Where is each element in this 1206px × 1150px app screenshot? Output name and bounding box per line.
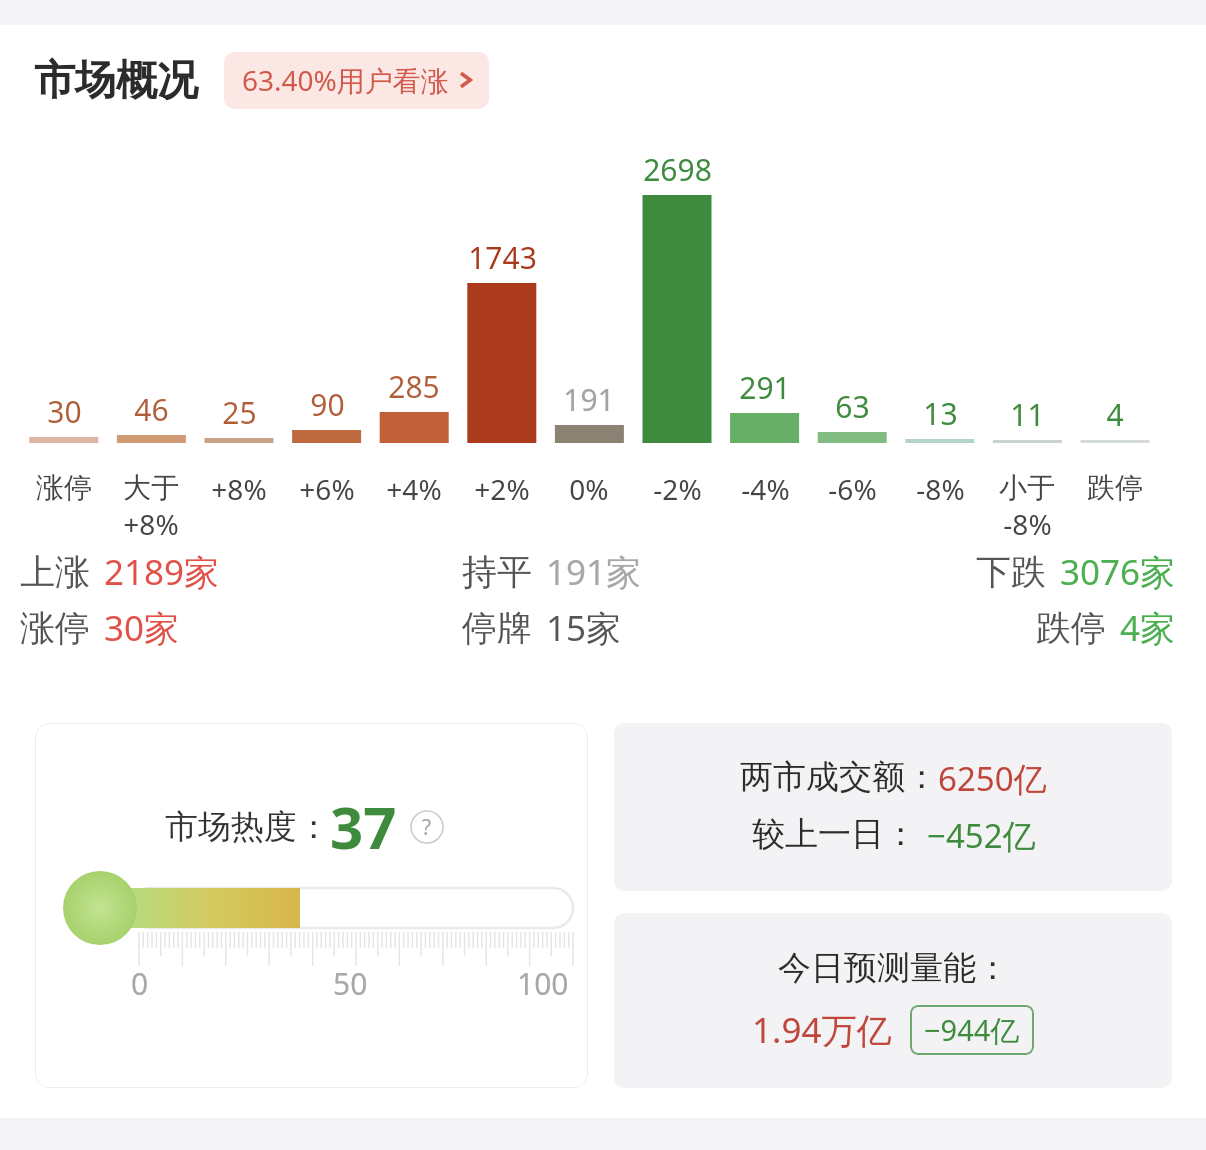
staticText: -4% [741,470,790,508]
staticText: +2% [474,470,530,508]
staticText: 2189家 [104,548,220,596]
staticText: 涨停 [20,606,90,650]
staticText: 15家 [546,604,622,652]
staticText: +8% [211,470,267,508]
staticText: 6250亿 [938,756,1047,801]
staticText: 30 [47,391,82,432]
staticText: 1743 [468,237,537,278]
staticText: -6% [828,470,877,508]
staticText: 小于 [999,470,1055,505]
staticText: 持平 [462,550,532,594]
staticText: 30家 [104,604,180,652]
staticText: 跌停 [1087,470,1143,505]
staticText: 2698 [643,149,712,190]
staticText: −944亿 [924,1010,1020,1050]
staticText: 63 [835,386,870,427]
staticText: ? [422,813,432,842]
staticText: -8% [916,470,965,508]
staticText: 291 [739,367,791,408]
staticText: 0 [131,963,149,1004]
staticText: +4% [386,470,442,508]
staticText: 0% [569,470,609,508]
button[interactable]: 63.40%用户看涨 [224,52,489,109]
staticText: 下跌 [976,550,1046,594]
staticText: 1.94万亿 [752,1006,892,1054]
button[interactable] [35,723,588,1088]
staticText: -2% [653,470,702,508]
staticText: 较上一日： [752,813,917,855]
staticText: 涨停 [36,470,92,505]
staticText: 上涨 [20,550,90,594]
staticText: +6% [299,470,355,508]
staticText: 今日预测量能： [778,947,1009,989]
button[interactable]: 停牌 [462,604,758,652]
staticText: 两市成交额： [740,756,938,798]
staticText: 13 [923,393,958,434]
staticText: −452亿 [927,813,1036,858]
button[interactable]: 持平 [462,548,758,596]
staticText: 3076家 [1060,548,1176,596]
button[interactable]: 两市成交额： [614,723,1172,891]
staticText: 停牌 [462,606,532,650]
staticText: 191家 [546,548,642,596]
staticText: -8% [1003,505,1052,543]
staticText: 46 [134,389,169,430]
staticText: 37 [330,787,397,866]
button[interactable]: 涨停 [20,604,316,652]
staticText: 11 [1010,394,1045,435]
button[interactable]: 帮助 [410,810,444,844]
staticText: 100 [517,963,569,1004]
button[interactable]: 下跌 [880,548,1176,596]
staticText: 大于 [123,470,179,505]
button[interactable]: 今日预测量能： [614,913,1172,1088]
staticText: 4家 [1120,604,1176,652]
staticText: 191 [563,379,615,420]
staticText: +8% [123,505,179,543]
staticText: 285 [388,366,440,407]
staticText: 90 [310,384,345,425]
staticText: 25 [222,392,257,433]
staticText: 4 [1106,394,1124,435]
staticText: 跌停 [1036,606,1106,650]
staticText: 市场热度： [165,806,330,848]
staticText: 50 [333,963,368,1004]
staticText: 市场概况 [34,55,198,107]
button[interactable]: 上涨 [20,548,316,596]
button[interactable]: 跌停 [880,604,1176,652]
staticText: 63.40%用户看涨 [242,61,449,99]
